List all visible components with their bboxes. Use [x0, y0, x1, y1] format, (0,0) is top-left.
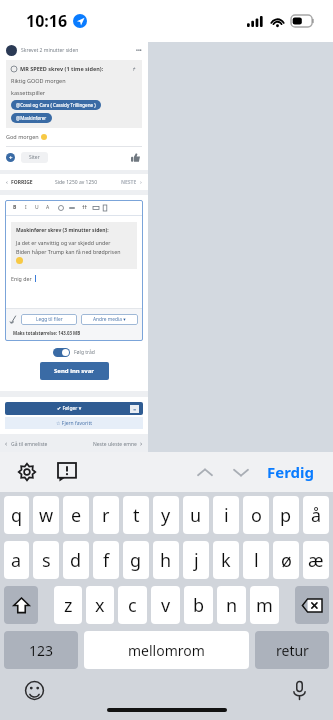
button[interactable]: y: [153, 496, 179, 534]
button[interactable]: Innstillinger: [14, 459, 40, 485]
button[interactable]: Lik: [129, 151, 142, 164]
staticText: j: [194, 548, 199, 573]
staticText: y: [161, 503, 171, 528]
button[interactable]: NESTE: [121, 178, 142, 186]
staticText: ‹: [5, 439, 8, 449]
staticText: FORRIGE: [11, 179, 33, 186]
button[interactable]: Vanlige folk har ikke råd til bolig i Os…: [8, 478, 140, 487]
button[interactable]: ø: [273, 541, 299, 579]
button[interactable]: Diktering: [287, 678, 311, 702]
button[interactable]: w: [33, 496, 59, 534]
staticText: Legg til filer: [36, 316, 63, 323]
staticText: ø: [281, 548, 292, 573]
button[interactable]: ††: [79, 204, 90, 211]
button[interactable]: u: [183, 496, 209, 534]
button[interactable]: a: [4, 541, 29, 579]
button[interactable]: Neste felt: [229, 460, 253, 484]
staticText: u: [190, 503, 202, 528]
button[interactable]: ‹: [5, 439, 48, 449]
button[interactable]: æ: [303, 541, 329, 579]
button[interactable]: B: [9, 204, 20, 211]
button[interactable]: Ferdig: [263, 456, 319, 488]
button[interactable]: f: [93, 541, 119, 579]
staticText: Side 1250 av 1250: [55, 179, 98, 186]
staticText: 123: [29, 641, 54, 660]
button[interactable]: Shift: [4, 586, 38, 624]
button[interactable]: j: [183, 541, 209, 579]
button[interactable]: e: [63, 496, 89, 534]
staticText: p: [280, 503, 292, 528]
button[interactable]: z: [54, 586, 82, 624]
button[interactable]: o: [243, 496, 269, 534]
button[interactable]: mellomrom: [84, 631, 249, 669]
button[interactable]: i: [213, 496, 239, 534]
button[interactable]: v: [151, 586, 180, 624]
staticText: Vanlige folk har ikke råd til bolig i Os…: [8, 479, 105, 486]
button[interactable]: Slett: [295, 586, 329, 624]
staticText: +: [9, 154, 13, 162]
button[interactable]: s: [33, 541, 59, 579]
button[interactable]: Verktøy: [102, 205, 108, 211]
staticText: t: [133, 503, 140, 528]
button[interactable]: 123: [4, 631, 78, 669]
button[interactable]: ☆ Fjern favoritt: [5, 417, 143, 429]
button[interactable]: @Cossi og Cara ( Cassidy Trillingene ): [11, 100, 101, 110]
button[interactable]: å: [303, 496, 329, 534]
button[interactable]: d: [63, 541, 89, 579]
staticText: v: [161, 593, 171, 618]
button[interactable]: Verktøy: [58, 205, 64, 211]
staticText: a: [11, 548, 22, 573]
staticText: U: [35, 204, 39, 211]
button[interactable]: ✔ Følger ▾: [5, 402, 143, 415]
button[interactable]: Neste uleste emne: [93, 439, 143, 449]
staticText: Maskinfører skrev (3 minutter siden):: [16, 227, 109, 234]
button[interactable]: q: [4, 496, 29, 534]
staticText: Biden håper Trump kan få ned brødprisen: [16, 248, 121, 255]
button[interactable]: @Maskinfører: [11, 113, 52, 123]
button[interactable]: Verktøy: [93, 205, 99, 211]
staticText: I: [25, 204, 27, 211]
staticText: d: [70, 548, 82, 573]
button[interactable]: h: [153, 541, 179, 579]
button[interactable]: k: [213, 541, 239, 579]
button[interactable]: g: [123, 541, 149, 579]
staticText: retur: [276, 641, 309, 660]
staticText: Enig der: [11, 275, 32, 282]
button[interactable]: A: [42, 204, 53, 211]
button[interactable]: U: [31, 204, 42, 211]
button[interactable]: ‹: [6, 178, 33, 186]
staticText: A: [46, 204, 50, 211]
staticText: Ja det er vanvittig og var skjedd under: [16, 239, 111, 246]
button[interactable]: x: [86, 586, 114, 624]
button[interactable]: retur: [255, 631, 329, 669]
button[interactable]: Legg til reaksjon: [6, 153, 15, 162]
staticText: mellomrom: [128, 641, 205, 660]
staticText: s: [42, 548, 51, 573]
staticText: m: [256, 593, 273, 618]
staticText: @Maskinfører: [16, 115, 47, 121]
button[interactable]: p: [273, 496, 299, 534]
button[interactable]: [53, 348, 70, 357]
button[interactable]: b: [184, 586, 213, 624]
button[interactable]: Legg til filer: [21, 314, 77, 325]
staticText: f: [103, 548, 110, 573]
staticText: Gå til emneliste: [11, 441, 48, 448]
button[interactable]: Emoji: [22, 678, 46, 702]
button[interactable]: l: [243, 541, 269, 579]
button[interactable]: Tilbakemelding: [54, 459, 80, 485]
staticText: æ: [308, 548, 324, 573]
button[interactable]: t: [123, 496, 149, 534]
button[interactable]: m: [250, 586, 279, 624]
staticText: @Cossi og Cara ( Cassidy Trillingene ): [16, 102, 96, 108]
button[interactable]: I: [20, 204, 31, 211]
button[interactable]: r: [93, 496, 119, 534]
button[interactable]: c: [118, 586, 147, 624]
button[interactable]: Andre media ▾: [81, 314, 138, 325]
staticText: ↱: [132, 66, 137, 72]
staticText: c: [128, 593, 137, 618]
button[interactable]: Send inn svar: [40, 362, 109, 380]
button[interactable]: Siter: [21, 152, 48, 163]
button[interactable]: Forrige felt: [193, 460, 217, 484]
button[interactable]: Verktøy: [69, 205, 75, 211]
button[interactable]: n: [217, 586, 246, 624]
